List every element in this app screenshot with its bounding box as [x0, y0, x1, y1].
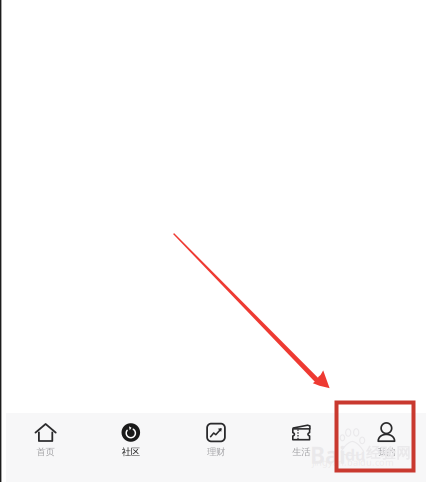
staticText: 首页 — [37, 446, 55, 458]
button[interactable]: 生活 — [259, 413, 344, 482]
staticText: 我的 — [377, 446, 395, 458]
staticText: 经验网 — [366, 444, 411, 462]
staticText: 理财 — [207, 446, 225, 458]
button[interactable]: 社区 — [88, 413, 173, 482]
button[interactable]: 我的 — [344, 413, 426, 482]
button[interactable]: 首页 — [3, 413, 88, 482]
staticText: Bai — [310, 440, 346, 470]
staticText: jingyan.baidu.com — [312, 456, 394, 468]
staticText: 社区 — [122, 446, 140, 458]
button[interactable]: 理财 — [173, 413, 259, 482]
staticText: 生活 — [292, 446, 310, 458]
staticText: du — [345, 444, 365, 465]
